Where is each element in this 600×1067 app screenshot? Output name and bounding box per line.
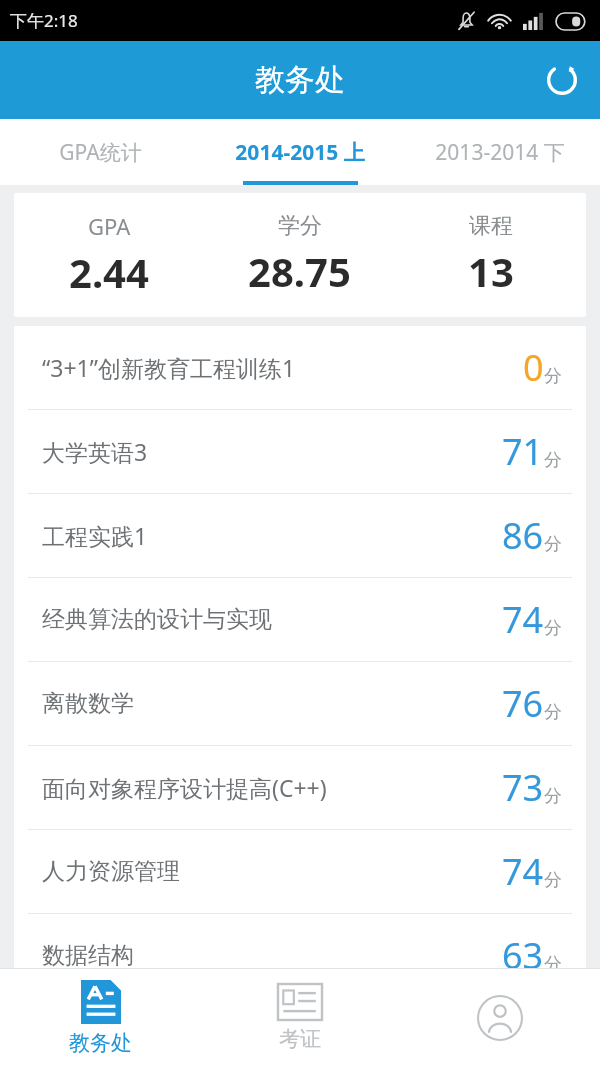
staticText: 分 <box>544 533 562 556</box>
button[interactable]: 数据结构 <box>14 914 586 997</box>
staticText: 0 <box>523 343 544 392</box>
button[interactable]: 考证 <box>200 969 400 1067</box>
staticText: 分 <box>544 365 562 388</box>
staticText: 分 <box>544 617 562 640</box>
staticText: 数据结构 <box>42 941 134 970</box>
staticText: 教务处 <box>69 1030 132 1056</box>
button[interactable]: 离散数学 <box>14 662 586 745</box>
staticText: 73 <box>502 763 544 812</box>
staticText: 经典算法的设计与实现 <box>42 605 272 634</box>
staticText: 课程 <box>469 212 513 240</box>
staticText: 大学英语3 <box>42 436 148 467</box>
staticText: “3+1”创新教育工程训练1 <box>42 352 296 383</box>
staticText: 分 <box>544 869 562 892</box>
staticText: 考证 <box>279 1026 321 1052</box>
button[interactable]: 教务处 <box>0 969 200 1067</box>
button[interactable]: 人力资源管理 <box>14 830 586 913</box>
staticText: 76 <box>502 679 544 728</box>
staticText: 2014-2015 上 <box>235 138 365 167</box>
staticText: 分 <box>544 701 562 724</box>
button[interactable]: Profile <box>400 969 600 1067</box>
staticText: 2013-2014 下 <box>435 138 565 167</box>
button[interactable]: “3+1”创新教育工程训练1 <box>14 326 586 409</box>
button[interactable]: GPA统计 <box>0 119 200 185</box>
staticText: 28.75 <box>248 244 351 298</box>
staticText: 下午2:18 <box>10 9 78 32</box>
staticText: 86 <box>502 511 544 560</box>
staticText: 学分 <box>278 212 322 240</box>
staticText: GPA <box>88 211 131 241</box>
staticText: 面向对象程序设计提高(C++) <box>42 772 327 803</box>
button[interactable]: GPA <box>14 193 586 317</box>
staticText: 71 <box>502 427 544 476</box>
staticText: 74 <box>502 595 544 644</box>
staticText: 教务处 <box>255 61 345 99</box>
staticText: 63 <box>502 931 544 980</box>
button[interactable]: 大学英语3 <box>14 410 586 493</box>
staticText: 分 <box>544 449 562 472</box>
button[interactable]: 2013-2014 下 <box>400 119 600 185</box>
staticText: 74 <box>502 847 544 896</box>
button[interactable]: 面向对象程序设计提高(C++) <box>14 746 586 829</box>
staticText: 工程实践1 <box>42 520 148 551</box>
button[interactable]: 工程实践1 <box>14 494 586 577</box>
staticText: 分 <box>544 953 562 976</box>
button[interactable]: 2014-2015 上 <box>200 119 400 185</box>
staticText: 2.44 <box>69 245 149 299</box>
staticText: 人力资源管理 <box>42 857 180 886</box>
staticText: 分 <box>544 785 562 808</box>
button[interactable]: 经典算法的设计与实现 <box>14 578 586 661</box>
button[interactable]: Refresh <box>534 52 590 108</box>
staticText: 13 <box>468 244 514 298</box>
staticText: GPA统计 <box>59 138 142 167</box>
staticText: 离散数学 <box>42 689 134 718</box>
